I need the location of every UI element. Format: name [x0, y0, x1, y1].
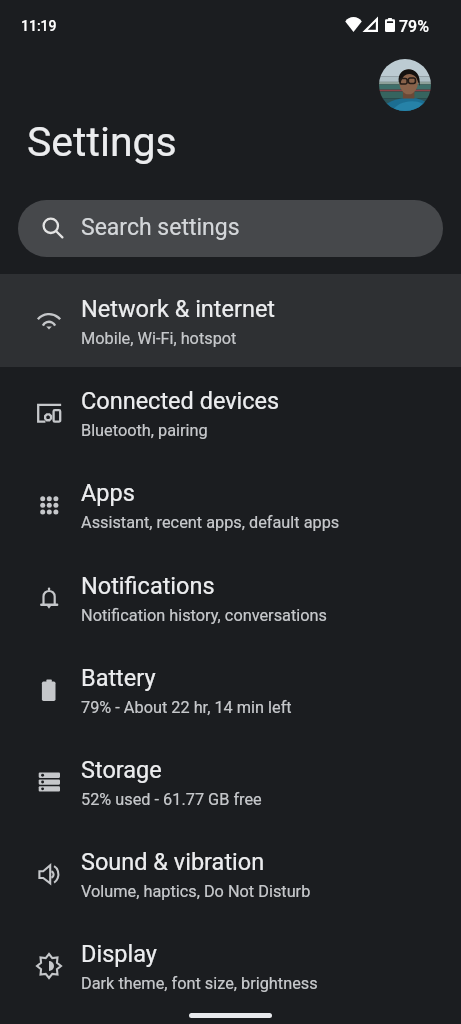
- staticText: Dark theme, font size, brightness: [81, 974, 318, 993]
- staticText: 79%: [399, 17, 429, 36]
- button[interactable]: Display: [0, 919, 461, 1012]
- staticText: Battery: [81, 664, 156, 692]
- button[interactable]: Notifications: [0, 551, 461, 644]
- button[interactable]: Network & internet: [0, 274, 461, 367]
- staticText: Settings: [27, 118, 177, 166]
- button[interactable]: Account: [379, 59, 431, 111]
- staticText: Search settings: [81, 214, 240, 241]
- other: Mobile signal: [364, 18, 378, 32]
- staticText: 11:19: [21, 18, 57, 34]
- other: Wi-Fi: [345, 17, 362, 32]
- button[interactable]: Sound & vibration: [0, 827, 461, 920]
- staticText: Assistant, recent apps, default apps: [81, 513, 340, 532]
- staticText: Network & internet: [81, 295, 276, 323]
- button[interactable]: Battery: [0, 643, 461, 736]
- staticText: Apps: [81, 479, 135, 507]
- staticText: 52% used - 61.77 GB free: [81, 790, 262, 809]
- staticText: Mobile, Wi-Fi, hotspot: [81, 329, 237, 348]
- button[interactable]: Apps: [0, 458, 461, 551]
- staticText: Connected devices: [81, 387, 280, 415]
- other: Battery 79 percent: [385, 18, 395, 32]
- staticText: Storage: [81, 756, 162, 784]
- button[interactable]: Storage: [0, 735, 461, 828]
- staticText: Bluetooth, pairing: [81, 421, 208, 440]
- button[interactable]: Connected devices: [0, 366, 461, 459]
- staticText: Volume, haptics, Do Not Disturb: [81, 882, 311, 901]
- staticText: Sound & vibration: [81, 848, 265, 876]
- staticText: Notification history, conversations: [81, 606, 327, 625]
- staticText: 79% - About 22 hr, 14 min left: [81, 698, 292, 717]
- staticText: Notifications: [81, 572, 215, 600]
- staticText: Display: [81, 940, 157, 968]
- button[interactable]: Search settings: [18, 200, 443, 257]
